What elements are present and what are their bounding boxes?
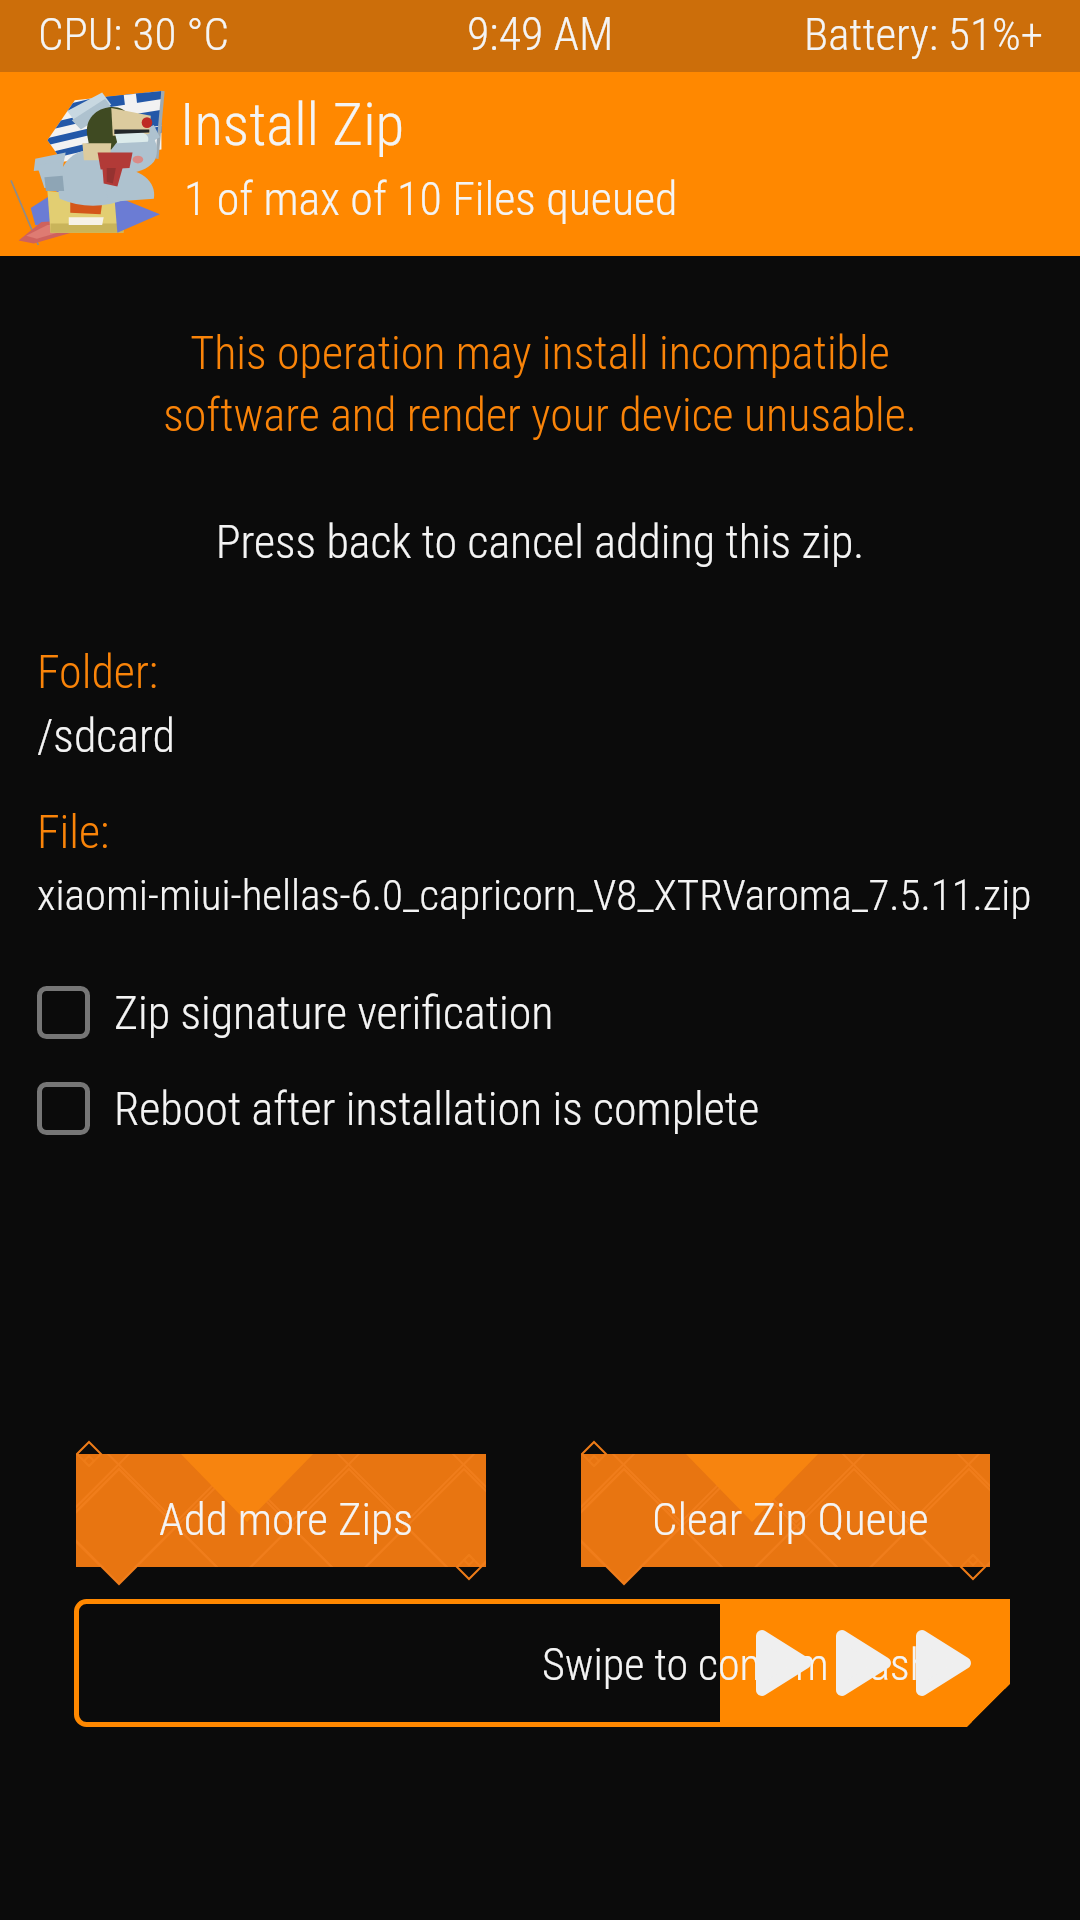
button[interactable]: Clear Zip Queue xyxy=(553,1426,1018,1595)
staticText: Zip signature verification xyxy=(114,986,554,1040)
staticText: Clear Zip Queue xyxy=(652,1493,929,1546)
button[interactable]: Zip signature verification xyxy=(0,970,1080,1055)
staticText: Battery: 51%+ xyxy=(804,8,1043,61)
staticText: 9:49 AM xyxy=(467,7,614,61)
staticText: Press back to cancel adding this zip. xyxy=(0,515,1080,569)
staticText: This operation may install incompatible … xyxy=(0,326,1080,442)
staticText: /sdcard xyxy=(37,709,175,763)
staticText: Swipe to confirm Flash xyxy=(542,1639,931,1691)
staticText: xiaomi-miui-hellas-6.0_capricorn_V8_XTRV… xyxy=(37,870,1032,920)
staticText: 1 of max of 10 Files queued xyxy=(184,172,678,226)
staticText: CPU: 30 °C xyxy=(38,8,229,61)
staticText: Install Zip xyxy=(180,90,405,159)
button[interactable]: Swipe to confirm Flash xyxy=(74,1599,1010,1727)
staticText: Reboot after installation is complete xyxy=(114,1082,760,1136)
staticText: Add more Zips xyxy=(159,1493,414,1546)
button[interactable]: Add more Zips xyxy=(48,1426,514,1595)
staticText: Folder: xyxy=(37,645,159,699)
staticText: File: xyxy=(37,805,110,859)
button[interactable]: Reboot after installation is complete xyxy=(0,1066,1080,1151)
